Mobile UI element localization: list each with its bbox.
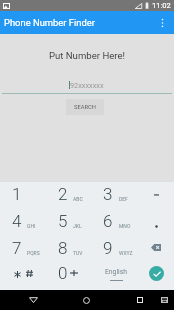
- staticText: 0: [58, 263, 68, 283]
- staticText: 6: [103, 211, 113, 231]
- button[interactable]: [130, 236, 174, 263]
- button[interactable]: [0, 236, 43, 263]
- button[interactable]: [43, 209, 86, 236]
- staticText: WXYZ: [119, 250, 133, 256]
- staticText: GHI: [27, 223, 36, 229]
- button[interactable]: [43, 236, 86, 263]
- button[interactable]: [130, 209, 174, 236]
- staticText: 92xxxxxxx: [70, 81, 104, 90]
- button[interactable]: [0, 182, 43, 209]
- staticText: ABC: [73, 196, 83, 202]
- other: Delete: [151, 244, 161, 251]
- staticText: 9: [103, 238, 113, 258]
- button[interactable]: More options: [153, 11, 171, 34]
- staticText: 8: [58, 238, 68, 258]
- staticText: PQRS: [27, 250, 40, 256]
- staticText: Phone Number Finder: [4, 17, 95, 28]
- staticText: 2: [58, 184, 68, 204]
- button[interactable]: [86, 236, 130, 263]
- staticText: 4: [12, 211, 22, 231]
- button[interactable]: [43, 263, 86, 290]
- staticText: DEF: [119, 196, 128, 202]
- staticText: MNO: [119, 223, 131, 229]
- button[interactable]: Home: [76, 290, 96, 310]
- staticText: 7: [12, 238, 22, 258]
- button[interactable]: [86, 263, 130, 290]
- staticText: TUV: [73, 250, 83, 256]
- button[interactable]: Recent apps: [130, 290, 150, 310]
- staticText: 1: [12, 184, 22, 204]
- other: Enter: [149, 266, 164, 281]
- button[interactable]: [43, 182, 86, 209]
- button[interactable]: [86, 209, 130, 236]
- staticText: 3: [103, 184, 113, 204]
- button[interactable]: [0, 209, 43, 236]
- staticText: Put Number Here!: [0, 50, 174, 61]
- staticText: 5: [58, 211, 68, 231]
- staticText: 11:02: [152, 1, 171, 10]
- button[interactable]: [130, 182, 174, 209]
- staticText: JKL: [73, 223, 82, 229]
- button[interactable]: [130, 263, 174, 290]
- button[interactable]: Back: [23, 290, 43, 310]
- staticText: SEARCH: [74, 104, 96, 111]
- button[interactable]: Change keyboard: [154, 290, 174, 310]
- button[interactable]: [86, 182, 130, 209]
- staticText: English: [105, 268, 127, 276]
- button[interactable]: SEARCH: [66, 99, 104, 115]
- button[interactable]: [0, 263, 43, 290]
